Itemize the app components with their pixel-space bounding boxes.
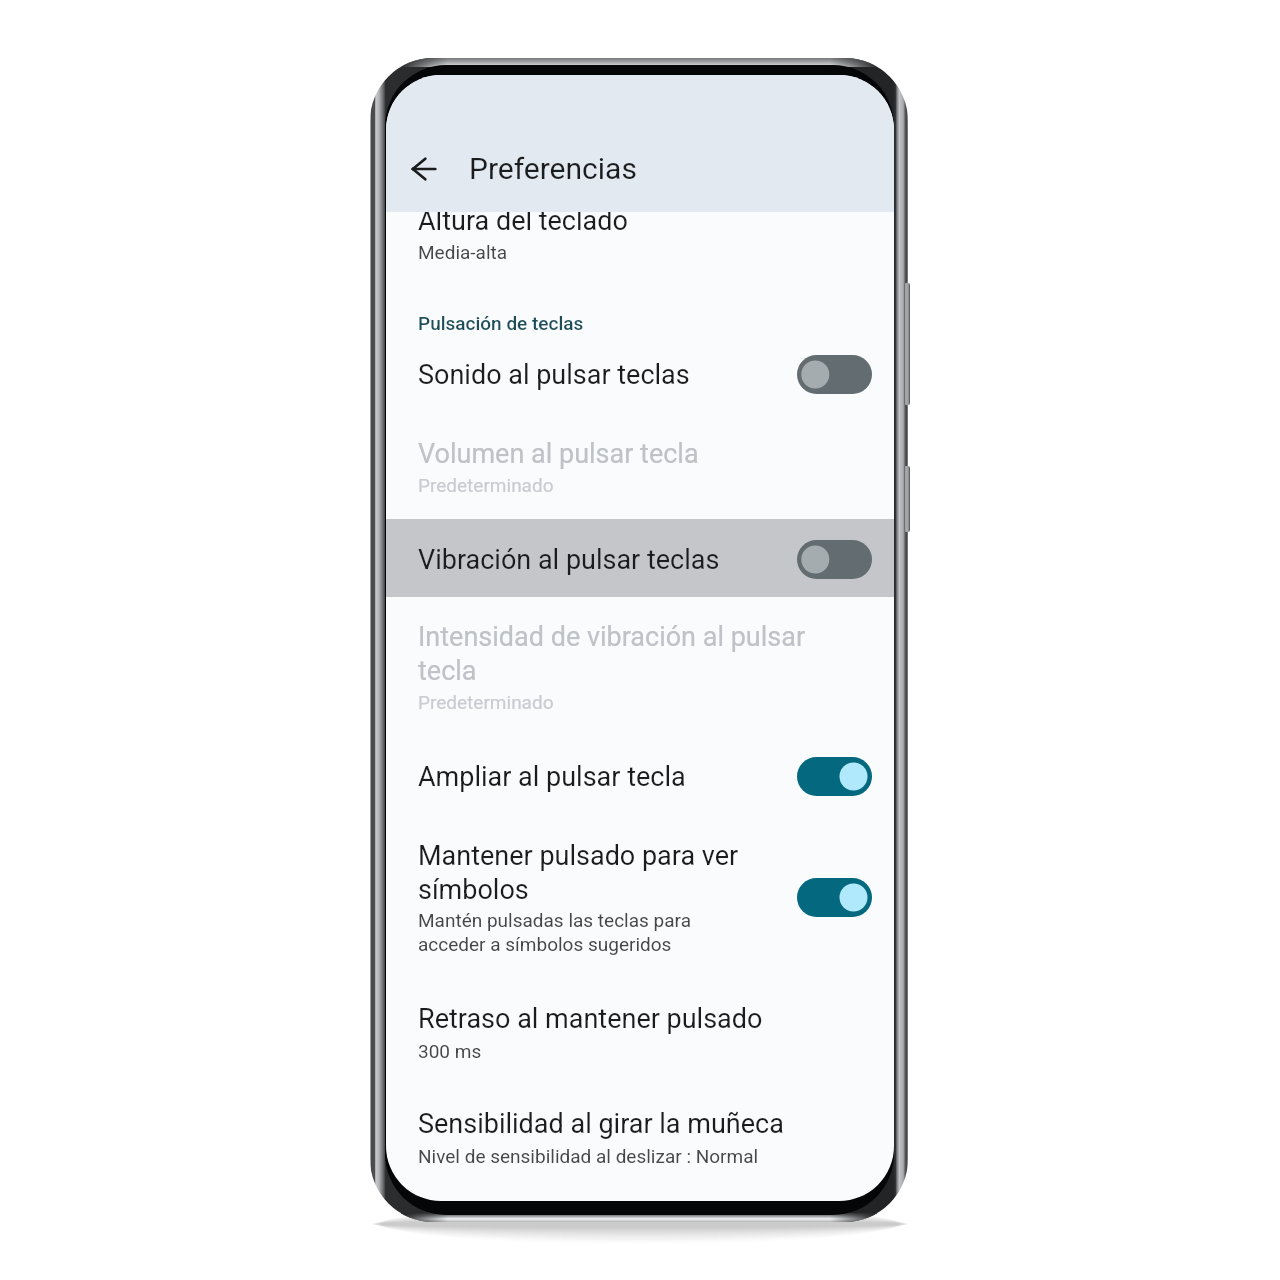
button[interactable]: Sensibilidad al girar la muñeca: [386, 1079, 894, 1185]
button[interactable]: Atrás: [401, 145, 448, 192]
staticText: 300 ms: [418, 1040, 482, 1062]
staticText: Pulsación de teclas: [418, 312, 584, 334]
staticText: Mantén pulsadas las teclas para acceder …: [418, 909, 708, 956]
button[interactable]: Desactivado: [797, 540, 872, 579]
button[interactable]: Mantener pulsado para ver símbolos: [386, 816, 894, 972]
staticText: Predeterminado: [418, 474, 554, 496]
button[interactable]: Intensidad de vibración al pulsar tecla: [386, 597, 894, 737]
staticText: Sensibilidad al girar la muñeca: [418, 1108, 784, 1140]
button[interactable]: Volumen al pulsar tecla: [386, 418, 894, 519]
button[interactable]: Activado: [797, 878, 872, 917]
staticText: Mantener pulsado para ver símbolos: [418, 840, 788, 906]
staticText: Preferencias: [469, 151, 637, 186]
button[interactable]: Retraso al mantener pulsado: [386, 972, 894, 1079]
button[interactable]: Sonido al pulsar teclas: [386, 340, 894, 418]
staticText: Ampliar al pulsar tecla: [418, 761, 686, 793]
staticText: Predeterminado: [418, 691, 554, 713]
button[interactable]: Desactivado: [797, 355, 872, 394]
button[interactable]: Altura del teclado: [386, 211, 894, 320]
staticText: Altura del teclado: [418, 205, 628, 237]
button[interactable]: Ampliar al pulsar tecla: [386, 737, 894, 816]
staticText: Media-alta: [418, 241, 508, 263]
staticText: Nivel de sensibilidad al deslizar : Norm…: [418, 1145, 759, 1167]
staticText: Sonido al pulsar teclas: [418, 359, 690, 391]
button[interactable]: Vibración al pulsar teclas: [386, 519, 894, 597]
button[interactable]: Activado: [797, 757, 872, 796]
staticText: Retraso al mantener pulsado: [418, 1003, 763, 1035]
staticText: Volumen al pulsar tecla: [418, 438, 699, 470]
staticText: Intensidad de vibración al pulsar tecla: [418, 621, 830, 687]
staticText: Vibración al pulsar teclas: [418, 544, 720, 576]
